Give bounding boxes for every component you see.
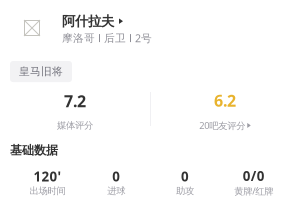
image [24,20,40,36]
staticText: 0/0 [243,167,265,185]
staticText: 120' [33,167,61,185]
button[interactable]: 阿什拉夫 [62,13,123,29]
staticText: 皇马旧将 [19,65,63,78]
staticText: 后卫 [104,31,126,45]
button[interactable]: 7.2 [0,90,150,131]
staticText: 阿什拉夫 [62,13,114,29]
staticText: 出场时间 [29,185,65,197]
staticText: 2号 [135,31,152,45]
staticText: 黄牌/红牌 [234,185,273,197]
staticText: 6.2 [214,90,236,111]
button[interactable]: 6.2 [150,90,300,132]
staticText: 0 [181,167,189,185]
staticText: 媒体评分 [57,120,93,131]
staticText: 7.2 [64,90,86,112]
staticText: 0 [112,167,120,185]
staticText: 进球 [107,185,125,197]
staticText: 基础数据 [10,143,58,158]
staticText: 摩洛哥 [62,31,95,45]
staticText: 20吧友评分 [199,119,245,132]
button[interactable]: 阿什拉夫 player photo [10,6,54,50]
staticText: 助攻 [176,185,194,197]
